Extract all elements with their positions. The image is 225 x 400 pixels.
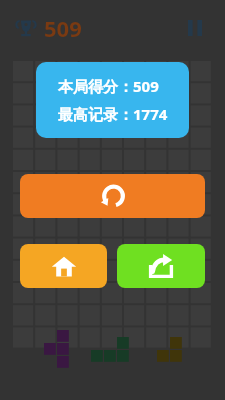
button[interactable]: Share [117, 244, 205, 288]
button[interactable]: Restart [20, 174, 205, 218]
button[interactable]: Pause [181, 14, 209, 42]
staticText: 最高记录：1774 [58, 104, 168, 124]
staticText: 本局得分：509 [58, 76, 159, 96]
staticText: 509 [44, 13, 82, 43]
button[interactable]: Home [20, 244, 107, 288]
button[interactable]: 本局得分：509 [36, 62, 189, 138]
